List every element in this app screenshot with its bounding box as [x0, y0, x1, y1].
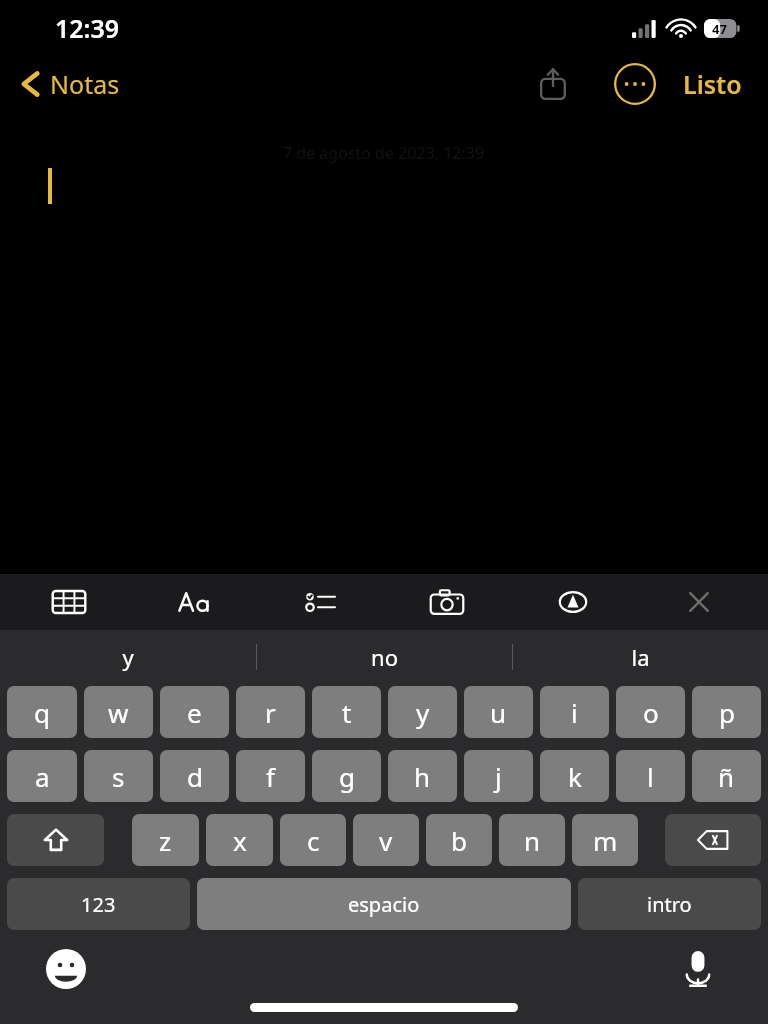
button[interactable]: Table — [6, 574, 132, 630]
staticText: m — [593, 823, 618, 858]
button[interactable]: espacio — [197, 878, 571, 930]
button[interactable]: j — [464, 750, 533, 802]
button[interactable]: e — [160, 686, 229, 738]
button[interactable]: o — [616, 686, 685, 738]
button[interactable]: Camera — [384, 574, 510, 630]
button[interactable]: y — [0, 630, 256, 684]
staticText: o — [643, 695, 659, 730]
staticText: Listo — [683, 67, 742, 101]
button[interactable]: z — [132, 814, 199, 866]
button[interactable]: Dictation — [672, 943, 724, 995]
button[interactable]: v — [353, 814, 419, 866]
button[interactable]: Checklist — [258, 574, 384, 630]
button[interactable]: ñ — [692, 750, 761, 802]
button[interactable]: t — [312, 686, 381, 738]
button[interactable]: intro — [578, 878, 761, 930]
button[interactable]: Share — [525, 56, 581, 112]
staticText: f — [266, 759, 275, 794]
button[interactable]: Markup — [510, 574, 636, 630]
staticText: 7 de agosto de 2023, 12:39 — [283, 142, 485, 164]
staticText: j — [495, 759, 502, 794]
staticText: c — [307, 823, 320, 858]
button[interactable]: w — [84, 686, 153, 738]
button[interactable]: 123 — [7, 878, 190, 930]
staticText: e — [187, 695, 202, 730]
staticText: q — [34, 695, 50, 730]
button[interactable]: d — [160, 750, 229, 802]
button[interactable]: Listo — [675, 57, 750, 111]
button[interactable]: l — [616, 750, 685, 802]
button[interactable]: r — [236, 686, 305, 738]
staticText: g — [339, 759, 355, 794]
button[interactable]: g — [312, 750, 381, 802]
staticText: 47 — [712, 20, 727, 38]
staticText: t — [342, 695, 352, 730]
button[interactable]: x — [206, 814, 273, 866]
button[interactable]: h — [388, 750, 457, 802]
button[interactable]: Shift — [7, 814, 104, 866]
staticText: n — [524, 823, 541, 858]
button[interactable]: k — [540, 750, 609, 802]
staticText: k — [568, 759, 582, 794]
staticText: 12:39 — [55, 11, 120, 45]
staticText: i — [571, 695, 578, 730]
staticText: b — [451, 823, 467, 858]
staticText: p — [719, 695, 735, 730]
staticText: x — [233, 823, 247, 858]
button[interactable]: c — [280, 814, 346, 866]
staticText: no — [371, 642, 398, 672]
button[interactable]: b — [426, 814, 492, 866]
staticText: y — [122, 642, 134, 672]
staticText: w — [108, 695, 129, 730]
button[interactable]: f — [236, 750, 305, 802]
staticText: la — [631, 642, 650, 672]
staticText: Notas — [50, 67, 120, 101]
button[interactable]: q — [7, 686, 77, 738]
button[interactable]: y — [388, 686, 457, 738]
staticText: r — [265, 695, 276, 730]
button[interactable]: a — [7, 750, 77, 802]
staticText: ñ — [718, 759, 735, 794]
staticText: y — [416, 695, 430, 730]
button[interactable]: u — [464, 686, 533, 738]
button[interactable]: More options — [609, 58, 661, 110]
staticText: z — [159, 823, 172, 858]
button[interactable]: la — [512, 630, 768, 684]
button[interactable]: Format text — [132, 574, 258, 630]
staticText: l — [647, 759, 654, 794]
staticText: v — [379, 823, 393, 858]
button[interactable]: s — [84, 750, 153, 802]
button[interactable]: i — [540, 686, 609, 738]
staticText: d — [187, 759, 203, 794]
button[interactable]: m — [572, 814, 638, 866]
staticText: s — [112, 759, 125, 794]
staticText: 123 — [81, 891, 116, 918]
button[interactable]: Close keyboard — [636, 574, 762, 630]
staticText: h — [414, 759, 431, 794]
button[interactable]: n — [499, 814, 565, 866]
staticText: a — [35, 759, 50, 794]
button[interactable]: Emoji — [40, 943, 92, 995]
button[interactable]: Notas — [0, 61, 132, 107]
button[interactable]: Backspace — [665, 814, 761, 866]
button[interactable]: p — [692, 686, 761, 738]
staticText: espacio — [348, 891, 420, 918]
staticText: intro — [647, 891, 692, 918]
staticText: u — [490, 695, 507, 730]
button[interactable]: no — [256, 630, 512, 684]
